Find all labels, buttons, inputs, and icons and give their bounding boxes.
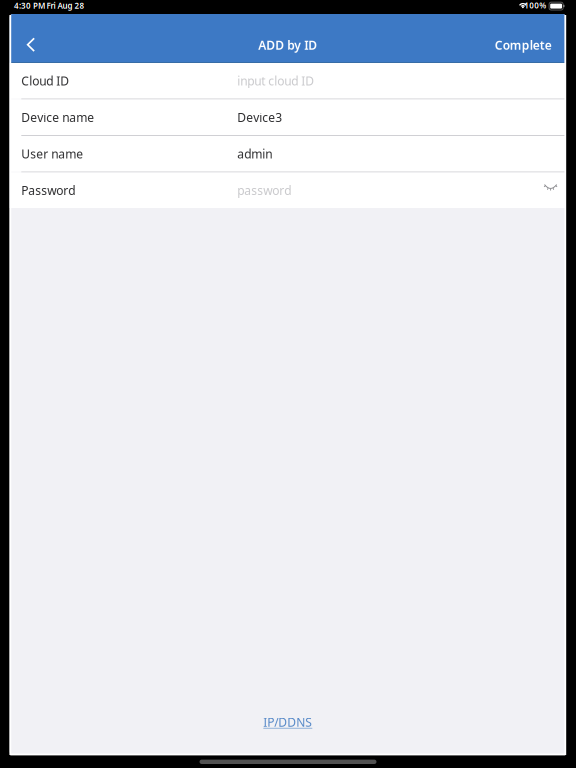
staticText: input cloud ID [237, 73, 314, 89]
button[interactable]: Device name [10, 99, 566, 135]
staticText: Fri Aug 28 [47, 0, 85, 11]
staticText: 4:30 PM [14, 0, 45, 11]
staticText: admin [237, 146, 272, 162]
button[interactable]: Back [10, 27, 52, 62]
staticText: IP/DDNS [263, 714, 312, 730]
staticText: Cloud ID [21, 73, 69, 89]
button[interactable]: Complete [495, 27, 566, 62]
button[interactable]: Password [10, 172, 566, 208]
staticText: User name [21, 146, 83, 162]
button[interactable]: Cloud ID [10, 63, 566, 98]
button[interactable]: IP/DDNS [258, 709, 317, 735]
staticText: 100% [524, 0, 546, 11]
button[interactable]: User name [10, 136, 566, 171]
staticText: Password [21, 182, 75, 198]
staticText: Complete [495, 37, 552, 53]
staticText: Device3 [237, 109, 282, 125]
staticText: password [237, 182, 291, 198]
staticText: Device name [21, 109, 94, 125]
staticText: ADD by ID [258, 37, 317, 53]
